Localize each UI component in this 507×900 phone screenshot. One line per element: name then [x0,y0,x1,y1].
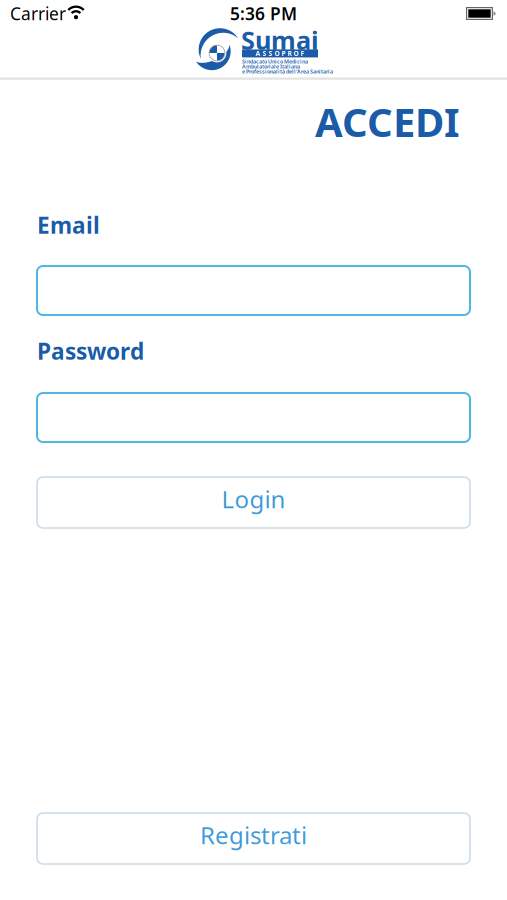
staticText: Ambulatoriale Italiana [242,63,300,70]
button[interactable]: Login [37,477,470,528]
staticText: Sumai [241,23,319,57]
staticText: Password [37,336,144,366]
staticText: Carrier [10,2,66,25]
button[interactable]: Registrati [37,813,470,864]
staticText: e Professionalità dell'Area Sanitaria [242,68,333,75]
staticText: Registrati [200,819,307,851]
staticText: Sindacato Unico Medicina [242,58,308,65]
staticText: Email [37,210,100,240]
staticText: ACCEDI [315,95,460,148]
staticText: Login [221,483,285,515]
staticText: A S S O P R O F [255,49,304,58]
staticText: 5:36 PM [230,2,297,25]
